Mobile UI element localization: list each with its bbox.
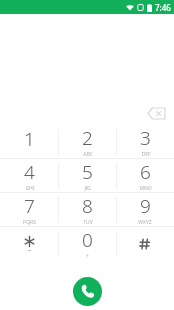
button[interactable]: Call [73, 277, 102, 306]
staticText: 9 [140, 193, 151, 219]
staticText: 6 [140, 159, 151, 185]
staticText: PQRS [23, 219, 36, 226]
staticText: 3 [140, 125, 151, 151]
staticText: + [86, 253, 89, 260]
staticText: GHI [25, 185, 35, 192]
button[interactable]: 1 [0, 125, 58, 158]
button[interactable]: 0 [58, 227, 116, 260]
staticText: TUV [83, 219, 93, 226]
button[interactable]: 6 [116, 159, 174, 192]
staticText: ABC [83, 151, 93, 158]
staticText: WXYZ [138, 219, 152, 226]
staticText: JKL [84, 185, 92, 192]
staticText: 7:46 [155, 2, 171, 13]
button[interactable]: Delete [144, 105, 168, 121]
staticText: 1 [24, 126, 35, 152]
staticText: 5 [82, 159, 93, 185]
button[interactable]: 3 [116, 125, 174, 158]
staticText: 2 [82, 125, 93, 151]
staticText: 8 [82, 193, 93, 219]
staticText: MNO [139, 185, 152, 192]
button[interactable]: 2 [58, 125, 116, 158]
button[interactable]: 7 [0, 193, 58, 226]
button[interactable] [116, 227, 174, 260]
staticText: 7 [24, 193, 35, 219]
button[interactable]: 9 [116, 193, 174, 226]
staticText: 4 [24, 159, 35, 185]
button[interactable]: 8 [58, 193, 116, 226]
button[interactable]: 5 [58, 159, 116, 192]
button[interactable] [0, 227, 58, 260]
staticText: 0 [82, 227, 93, 253]
staticText: DEF [141, 151, 151, 158]
button[interactable]: 4 [0, 159, 58, 192]
